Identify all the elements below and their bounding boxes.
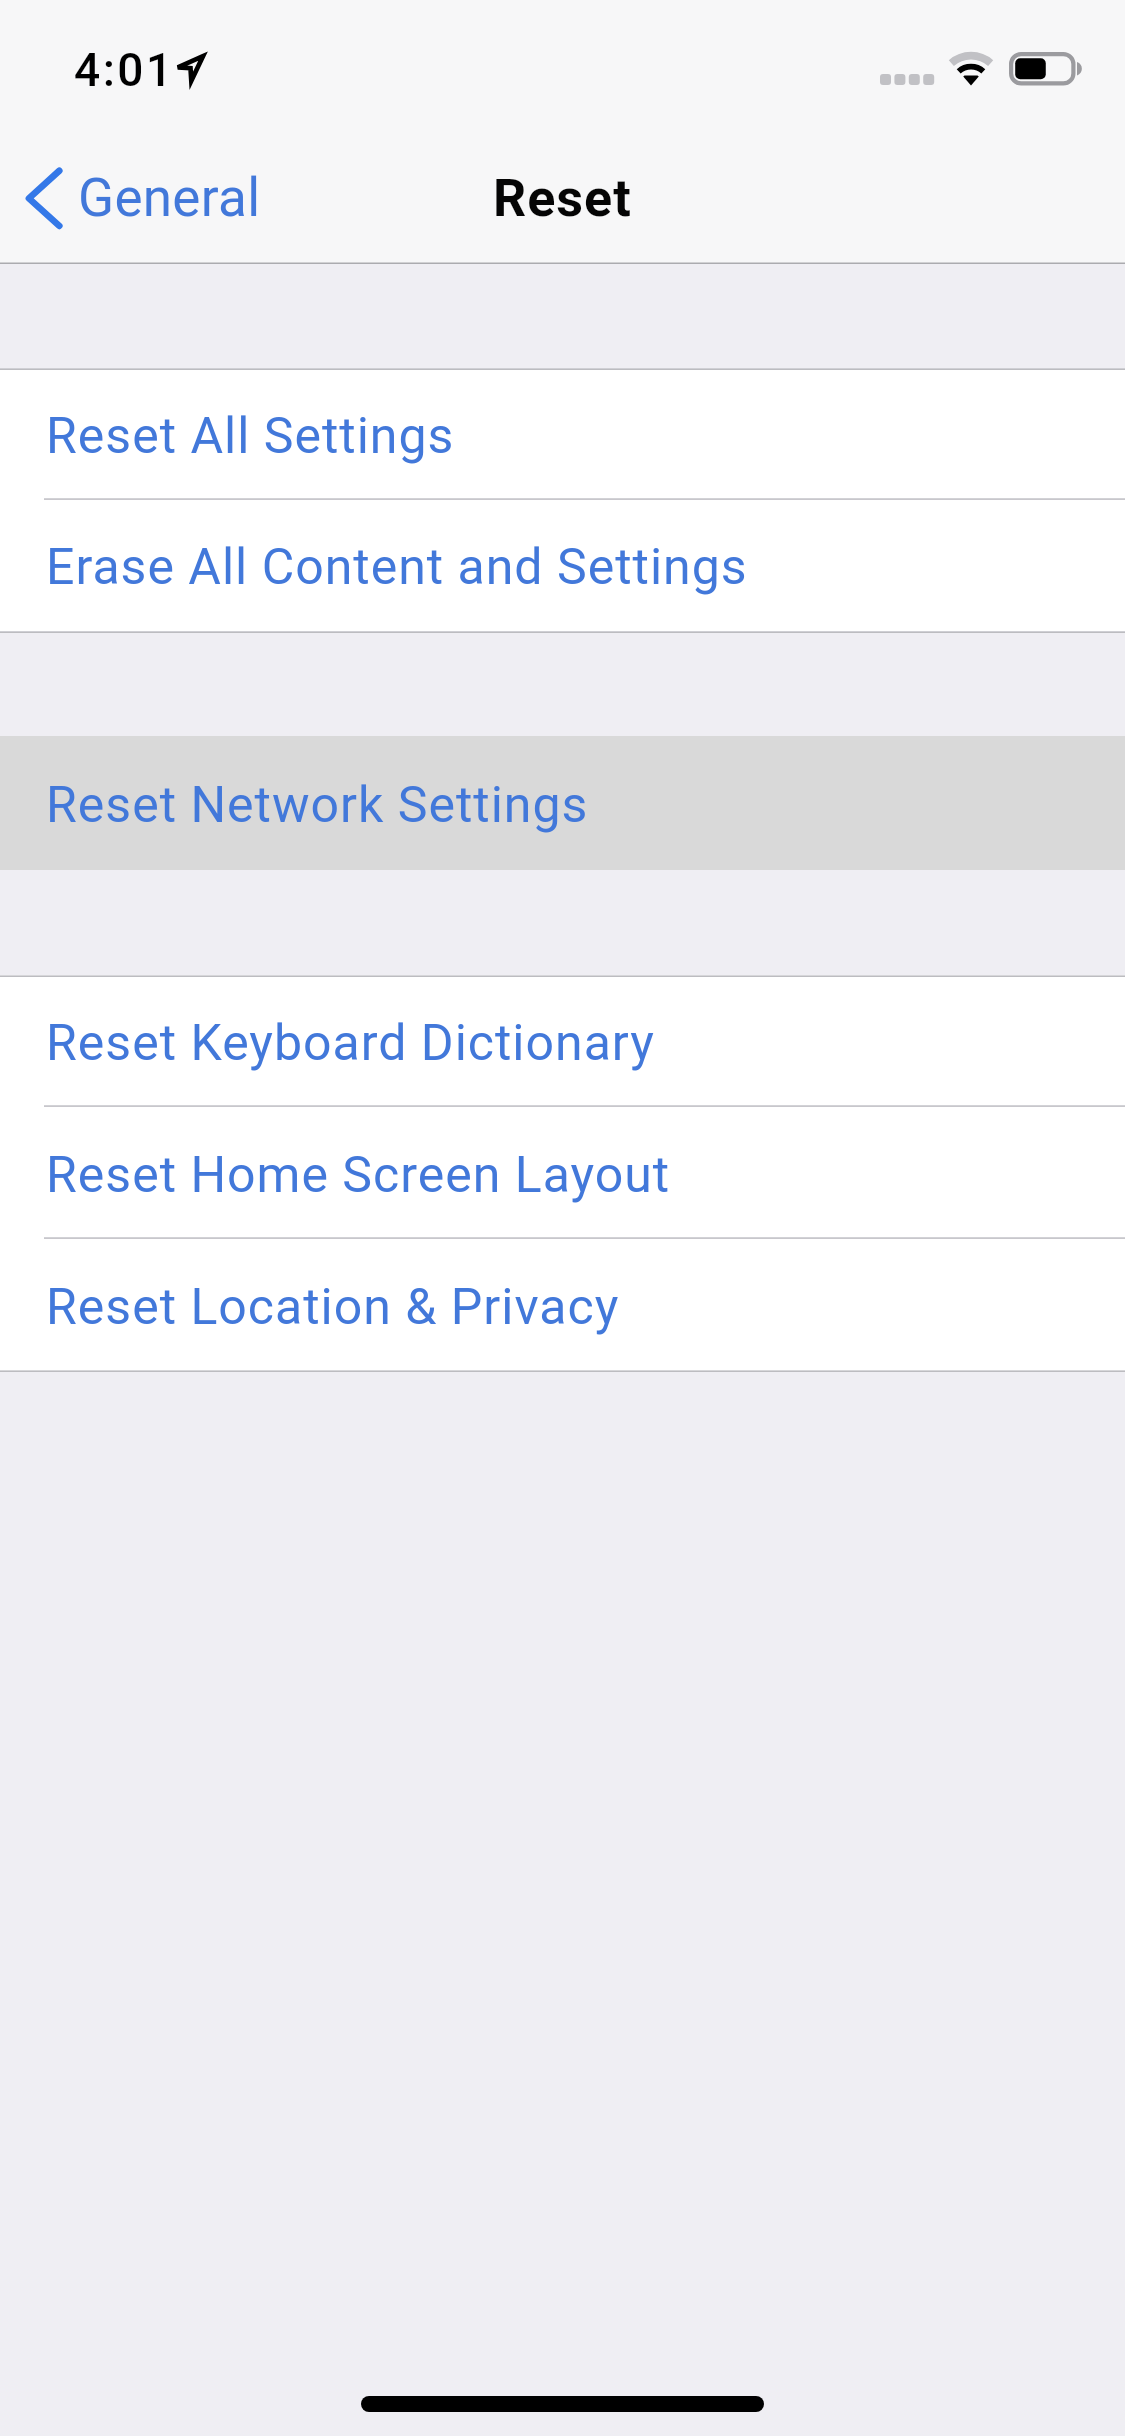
- button[interactable]: Reset Location & Privacy: [0, 1239, 1125, 1371]
- staticText: Reset Keyboard Dictionary: [46, 1014, 655, 1073]
- staticText: Reset: [493, 168, 632, 229]
- button[interactable]: Reset All Settings: [0, 369, 1125, 500]
- button[interactable]: Erase All Content and Settings: [0, 500, 1125, 631]
- button[interactable]: Reset Home Screen Layout: [0, 1107, 1125, 1239]
- button[interactable]: Back to General: [0, 132, 268, 264]
- button[interactable]: Reset Keyboard Dictionary: [0, 975, 1125, 1107]
- staticText: Erase All Content and Settings: [46, 538, 748, 597]
- button[interactable]: Reset Network Settings: [0, 736, 1125, 870]
- staticText: General: [78, 167, 261, 229]
- staticText: Reset All Settings: [46, 407, 455, 466]
- other: Location services active: [170, 48, 212, 90]
- staticText: Reset Network Settings: [46, 776, 589, 835]
- staticText: Reset Location & Privacy: [46, 1278, 620, 1337]
- staticText: Reset Home Screen Layout: [46, 1146, 671, 1205]
- staticText: 4:01: [74, 43, 175, 97]
